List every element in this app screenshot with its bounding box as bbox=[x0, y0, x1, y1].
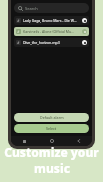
staticText: Customize your bbox=[4, 144, 99, 160]
staticText: Select bbox=[46, 126, 57, 131]
button[interactable]: Lady Gaga, Bruno Mars - Die W… bbox=[14, 16, 89, 25]
button[interactable]: Track options bbox=[82, 29, 87, 34]
button[interactable]: Search bbox=[14, 3, 89, 13]
button[interactable]: Dive_the_horizon.mp3 bbox=[14, 38, 89, 47]
staticText: Default alarm bbox=[40, 115, 64, 120]
button[interactable]: Karstneils - Alone (Official Mu… bbox=[14, 27, 89, 36]
staticText: music bbox=[34, 160, 70, 176]
button[interactable]: Select bbox=[14, 124, 89, 133]
button[interactable]: Back bbox=[65, 136, 92, 146]
staticText: Karstneils - Alone (Official Mu… bbox=[23, 29, 81, 34]
staticText: Dive_the_horizon.mp3 bbox=[23, 40, 81, 45]
button[interactable]: Home bbox=[38, 136, 65, 146]
button[interactable]: Track options bbox=[82, 18, 87, 23]
staticText: Lady Gaga, Bruno Mars - Die W… bbox=[23, 18, 81, 23]
staticText: Search bbox=[25, 6, 38, 11]
button[interactable]: Default alarm bbox=[14, 113, 89, 122]
button[interactable]: Track options bbox=[82, 40, 87, 45]
button[interactable]: Recent apps bbox=[11, 136, 38, 146]
